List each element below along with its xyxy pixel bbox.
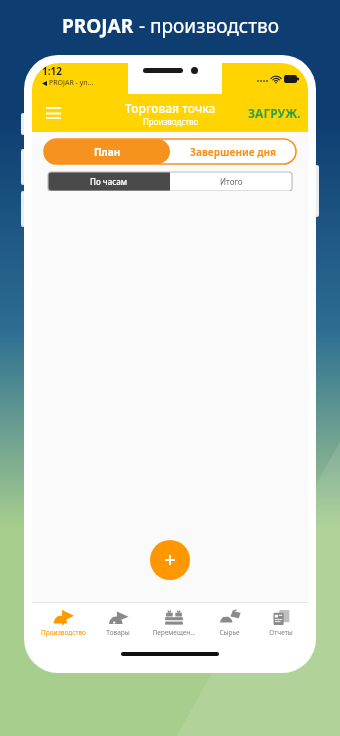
button[interactable]: Menu — [38, 98, 68, 128]
staticText: Производство — [143, 116, 199, 127]
staticText: 1:12 — [42, 64, 62, 78]
button[interactable]: ЗАГРУЖ. — [248, 105, 301, 121]
button[interactable]: Отчеты — [255, 603, 306, 643]
button[interactable]: Сырье — [204, 603, 255, 643]
staticText: Итого — [220, 176, 243, 187]
button[interactable]: План — [44, 139, 170, 164]
staticText: Производство — [41, 628, 86, 637]
button[interactable]: Перемещен... — [143, 603, 204, 643]
staticText: Перемещен... — [152, 628, 196, 637]
staticText: Торговая точка — [125, 100, 216, 116]
staticText: План — [94, 145, 121, 159]
staticText: ЗАГРУЖ. — [248, 105, 301, 121]
staticText: - производство — [134, 13, 279, 39]
button[interactable]: Завершение дня — [170, 139, 296, 164]
button[interactable]: Итого — [170, 172, 292, 191]
button[interactable]: Производство — [34, 603, 92, 643]
staticText: PROJAR - уп... — [49, 78, 94, 88]
button[interactable]: Add — [150, 540, 190, 580]
button[interactable]: По часам — [48, 172, 170, 191]
staticText: PROJAR — [62, 13, 134, 39]
staticText: Завершение дня — [190, 145, 277, 159]
staticText: Товары — [106, 628, 130, 637]
button[interactable]: Товары — [92, 603, 143, 643]
staticText: По часам — [90, 176, 128, 187]
staticText: Отчеты — [269, 628, 293, 637]
staticText: Сырье — [219, 628, 240, 637]
